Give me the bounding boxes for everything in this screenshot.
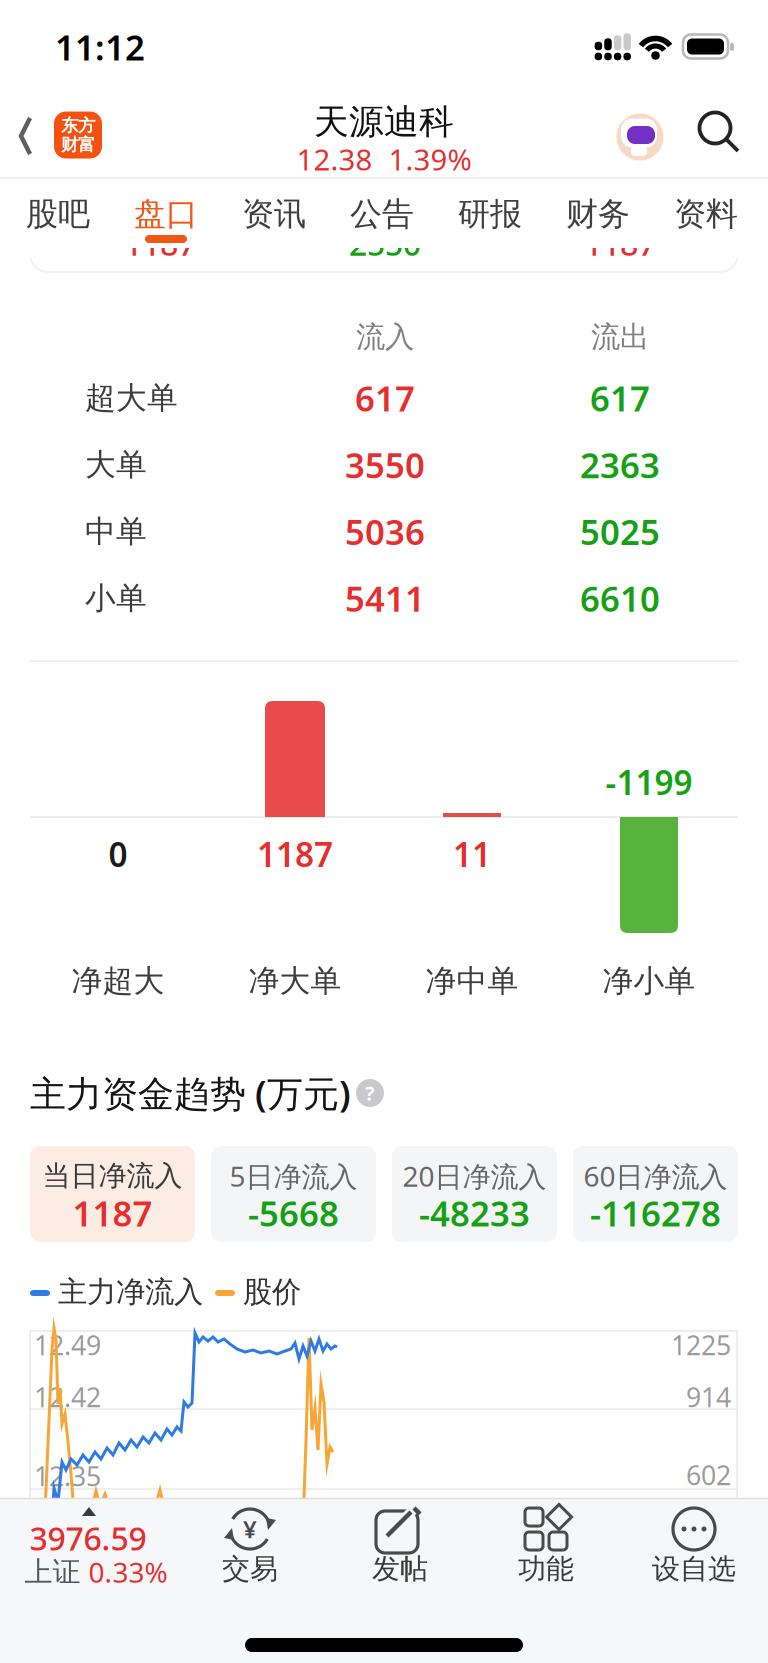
staticText: 主力净流入 <box>58 1274 203 1310</box>
staticText: 2550 <box>349 222 421 264</box>
staticText: -1199 <box>605 760 692 804</box>
staticText: 3976.59 <box>29 1517 146 1559</box>
button[interactable]: 20日净流入 <box>392 1146 557 1242</box>
staticText: 净中单 <box>425 962 518 1000</box>
staticText: 1187 <box>257 832 333 876</box>
button[interactable]: 研报 <box>440 187 540 241</box>
button[interactable]: 财务 <box>548 187 648 241</box>
button[interactable]: 当日净流入 <box>30 1146 195 1242</box>
staticText: 上证 <box>24 1555 80 1589</box>
staticText: 20日净流入 <box>402 1157 546 1195</box>
staticText: 3550 <box>345 442 425 488</box>
staticText: 1225 <box>671 1327 731 1363</box>
button[interactable]: 3976.59 <box>0 1495 180 1605</box>
button[interactable]: ? <box>356 1079 384 1107</box>
staticText: 净超大 <box>71 962 164 1000</box>
staticText: 12.42 <box>34 1379 101 1415</box>
staticText: 12.38 1.39% <box>296 139 471 178</box>
button[interactable]: 资料 <box>656 187 756 241</box>
button[interactable]: 发帖 <box>330 1500 470 1596</box>
staticText: 东方 <box>61 115 95 136</box>
staticText: 914 <box>686 1379 731 1415</box>
button[interactable]: ¥ <box>180 1500 320 1596</box>
staticText: 60日净流入 <box>583 1157 727 1195</box>
staticText: 617 <box>355 375 415 421</box>
staticText: 财务 <box>566 194 630 234</box>
staticText: 流出 <box>591 319 649 355</box>
staticText: 12.49 <box>34 1327 101 1363</box>
staticText: 资料 <box>674 194 738 234</box>
button[interactable]: 60日净流入 <box>573 1146 738 1242</box>
button[interactable]: 功能 <box>476 1500 616 1596</box>
staticText: 1187 <box>584 222 656 264</box>
staticText: 5036 <box>345 509 425 555</box>
button[interactable]: 股吧 <box>8 187 108 241</box>
staticText: 11:12 <box>55 24 145 70</box>
staticText: 1187 <box>72 1190 152 1236</box>
staticText: 净小单 <box>602 962 695 1000</box>
staticText: 研报 <box>458 194 522 234</box>
button[interactable] <box>616 113 664 161</box>
staticText: 盘口 <box>134 194 198 234</box>
staticText: 功能 <box>518 1552 574 1586</box>
staticText: ¥ <box>243 1513 257 1545</box>
staticText: 净大单 <box>248 962 341 1000</box>
staticText: 股价 <box>243 1274 301 1310</box>
staticText: 主力资金趋势 (万元) <box>30 1069 351 1117</box>
staticText: 1187 <box>124 222 196 264</box>
staticText: 602 <box>686 1457 731 1493</box>
staticText: 5411 <box>345 575 425 621</box>
button[interactable]: 盘口 <box>116 187 216 241</box>
staticText: -116278 <box>590 1190 721 1236</box>
staticText: 小单 <box>85 580 147 617</box>
staticText: ? <box>365 1080 375 1106</box>
staticText: 交易 <box>222 1552 278 1586</box>
staticText: 0.33% <box>88 1553 167 1591</box>
staticText: 发帖 <box>372 1552 428 1586</box>
staticText: 流入 <box>356 319 414 355</box>
staticText: 5日净流入 <box>229 1157 357 1195</box>
staticText: 大单 <box>85 446 147 484</box>
staticText: 11 <box>453 832 491 876</box>
staticText: 资讯 <box>242 194 306 234</box>
button[interactable]: 资讯 <box>224 187 324 241</box>
staticText: 0 <box>108 832 127 876</box>
staticText: 12.35 <box>34 1458 101 1494</box>
button[interactable]: 公告 <box>332 187 432 241</box>
staticText: 设自选 <box>652 1552 736 1586</box>
button[interactable] <box>0 101 60 171</box>
staticText: 天源迪科 <box>314 101 454 143</box>
staticText: -5668 <box>248 1190 339 1236</box>
staticText: 股吧 <box>26 194 90 234</box>
staticText: -48233 <box>419 1190 530 1236</box>
staticText: 超大单 <box>85 379 178 417</box>
staticText: 公告 <box>350 194 414 234</box>
staticText: 2363 <box>580 442 660 488</box>
button[interactable]: 设自选 <box>624 1500 764 1596</box>
staticText: 617 <box>590 375 650 421</box>
staticText: 当日净流入 <box>42 1159 182 1193</box>
button[interactable] <box>698 111 746 159</box>
button[interactable]: 东方 <box>54 111 102 158</box>
staticText: 中单 <box>85 513 147 550</box>
button[interactable]: 5日净流入 <box>211 1146 376 1242</box>
staticText: 财富 <box>61 134 95 155</box>
staticText: 6610 <box>580 575 660 621</box>
staticText: 5025 <box>580 509 660 555</box>
